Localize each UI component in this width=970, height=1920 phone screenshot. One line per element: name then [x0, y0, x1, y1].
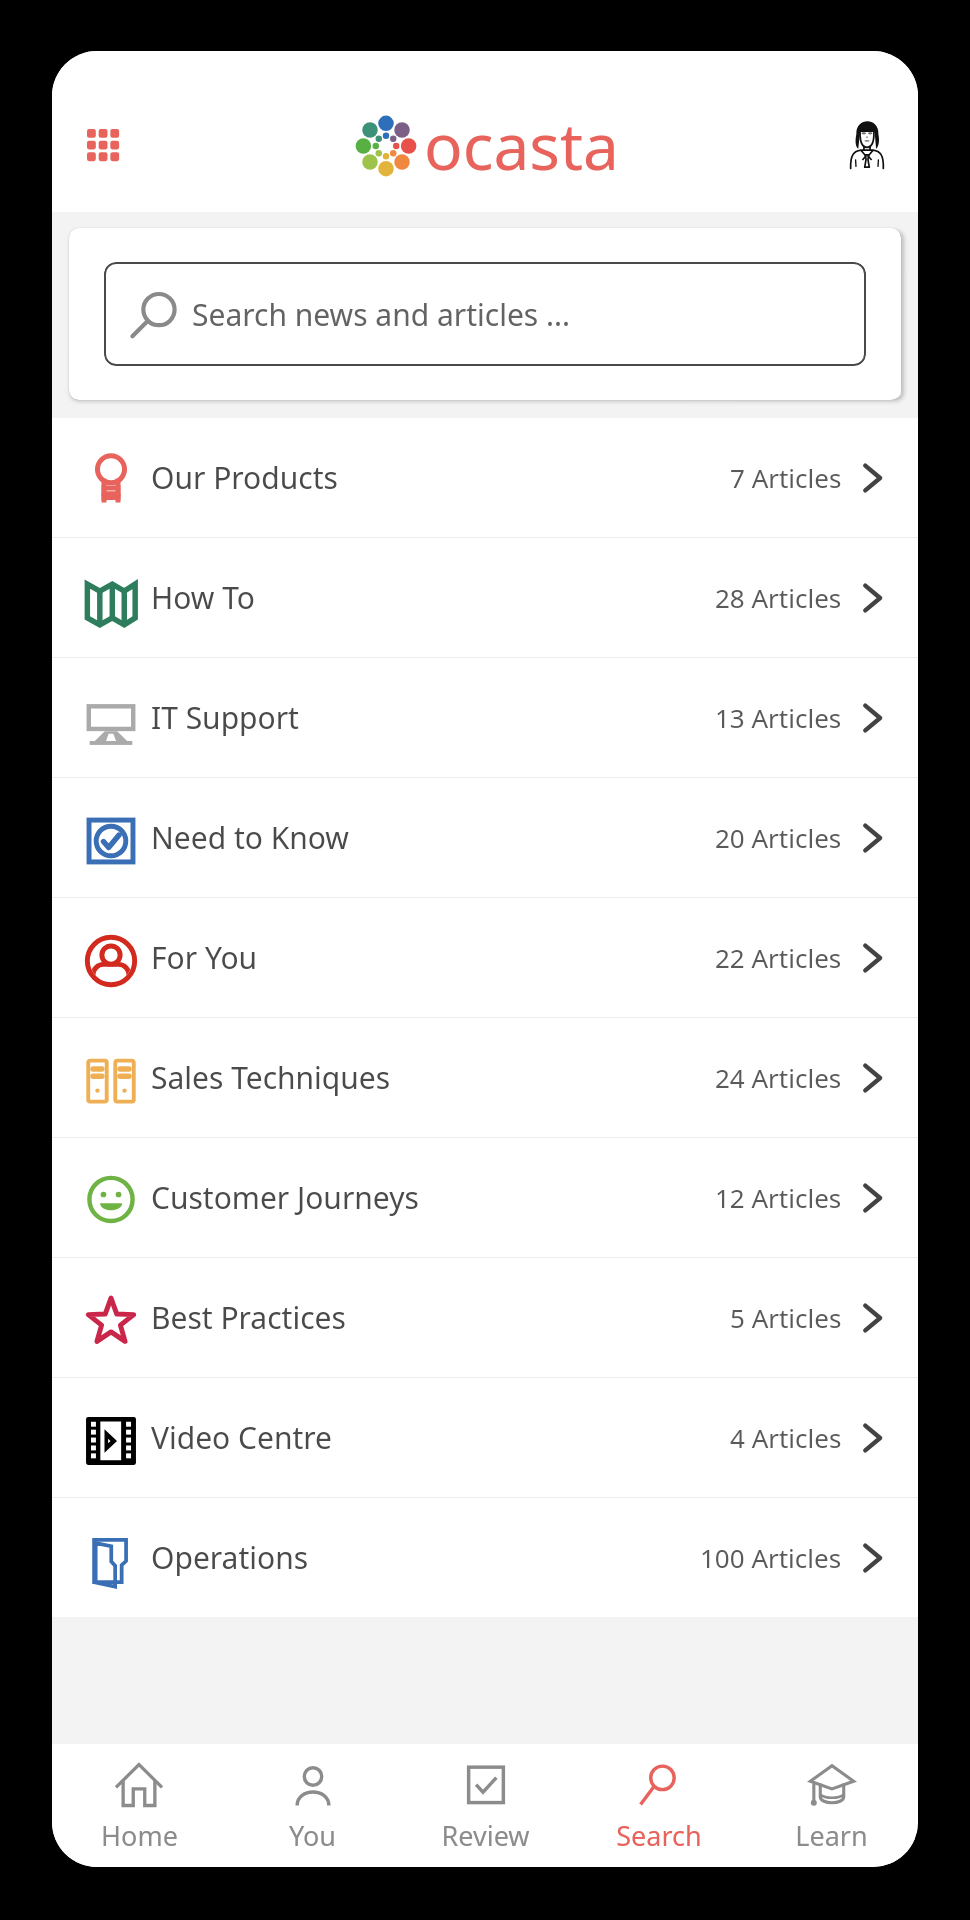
button[interactable]: Review [399, 1744, 572, 1867]
staticText: Learn [795, 1817, 868, 1854]
button[interactable]: Search news and articles ... [104, 262, 866, 366]
staticText: 12 Articles [715, 1180, 842, 1215]
button[interactable]: IT Support [52, 658, 918, 777]
staticText: Our Products [151, 457, 338, 498]
staticText: 100 Articles [700, 1540, 842, 1575]
button[interactable]: Our Products [52, 418, 918, 537]
staticText: Operations [151, 1537, 309, 1578]
staticText: IT Support [151, 697, 299, 738]
staticText: Video Centre [151, 1417, 333, 1458]
button[interactable]: Apps menu [68, 110, 140, 182]
staticText: Search news and articles ... [192, 294, 571, 335]
staticText: Sales Techniques [151, 1057, 391, 1098]
staticText: 22 Articles [715, 940, 842, 975]
button[interactable]: Best Practices [52, 1258, 918, 1377]
button[interactable]: Profile [831, 110, 903, 182]
staticText: 5 Articles [730, 1300, 842, 1335]
button[interactable]: For You [52, 898, 918, 1017]
button[interactable]: Learn [745, 1744, 918, 1867]
staticText: 4 Articles [730, 1420, 842, 1455]
staticText: ocasta [424, 102, 620, 189]
staticText: 28 Articles [715, 580, 842, 615]
button[interactable]: Sales Techniques [52, 1018, 918, 1137]
staticText: Best Practices [151, 1297, 346, 1338]
staticText: 7 Articles [730, 460, 842, 495]
button[interactable]: Customer Journeys [52, 1138, 918, 1257]
button[interactable]: Search [572, 1744, 745, 1867]
staticText: 20 Articles [715, 820, 842, 855]
button[interactable]: Operations [52, 1498, 918, 1617]
staticText: Home [101, 1817, 178, 1854]
staticText: Review [441, 1817, 530, 1854]
staticText: Customer Journeys [151, 1177, 419, 1218]
staticText: 13 Articles [715, 700, 842, 735]
staticText: 24 Articles [715, 1060, 842, 1095]
button[interactable]: Home [52, 1744, 226, 1867]
staticText: Need to Know [151, 817, 349, 858]
button[interactable]: You [226, 1744, 399, 1867]
button[interactable]: Video Centre [52, 1378, 918, 1497]
staticText: How To [151, 577, 255, 618]
staticText: Search [616, 1817, 702, 1854]
staticText: For You [151, 937, 258, 978]
staticText: You [289, 1817, 336, 1854]
button[interactable]: How To [52, 538, 918, 657]
button[interactable]: Need to Know [52, 778, 918, 897]
